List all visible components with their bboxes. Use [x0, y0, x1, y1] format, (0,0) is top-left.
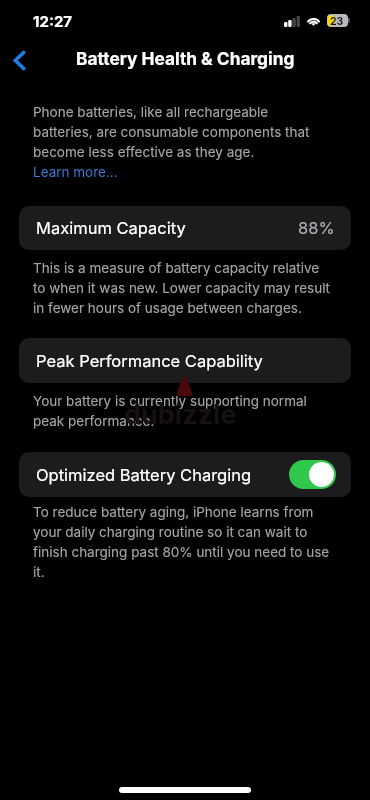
staticText: 88% [298, 218, 335, 238]
staticText: Peak Performance Capability [36, 351, 263, 371]
staticText: dubizzle [124, 398, 237, 431]
staticText: Battery Health & Charging [76, 48, 295, 69]
staticText: Maximum Capacity [36, 218, 186, 238]
staticText: This is a measure of battery capacity re… [33, 260, 331, 316]
staticText: 12:27 [33, 12, 73, 30]
button[interactable]: Peak Performance Capability [19, 338, 351, 383]
staticText: 23 [330, 15, 344, 28]
button[interactable]: Optimized Battery Charging toggle [289, 460, 336, 489]
staticText: Phone batteries, like all rechargeable b… [33, 104, 331, 160]
button[interactable]: Optimized Battery Charging [19, 452, 351, 497]
button[interactable]: Learn more... [33, 164, 118, 180]
staticText: Optimized Battery Charging [36, 465, 252, 485]
staticText: Your battery is currently supporting nor… [33, 393, 331, 429]
button[interactable]: Back [1, 42, 37, 78]
staticText: Learn more... [33, 164, 118, 180]
staticText: To reduce battery aging, iPhone learns f… [33, 504, 331, 580]
button[interactable]: Maximum Capacity [19, 206, 351, 250]
